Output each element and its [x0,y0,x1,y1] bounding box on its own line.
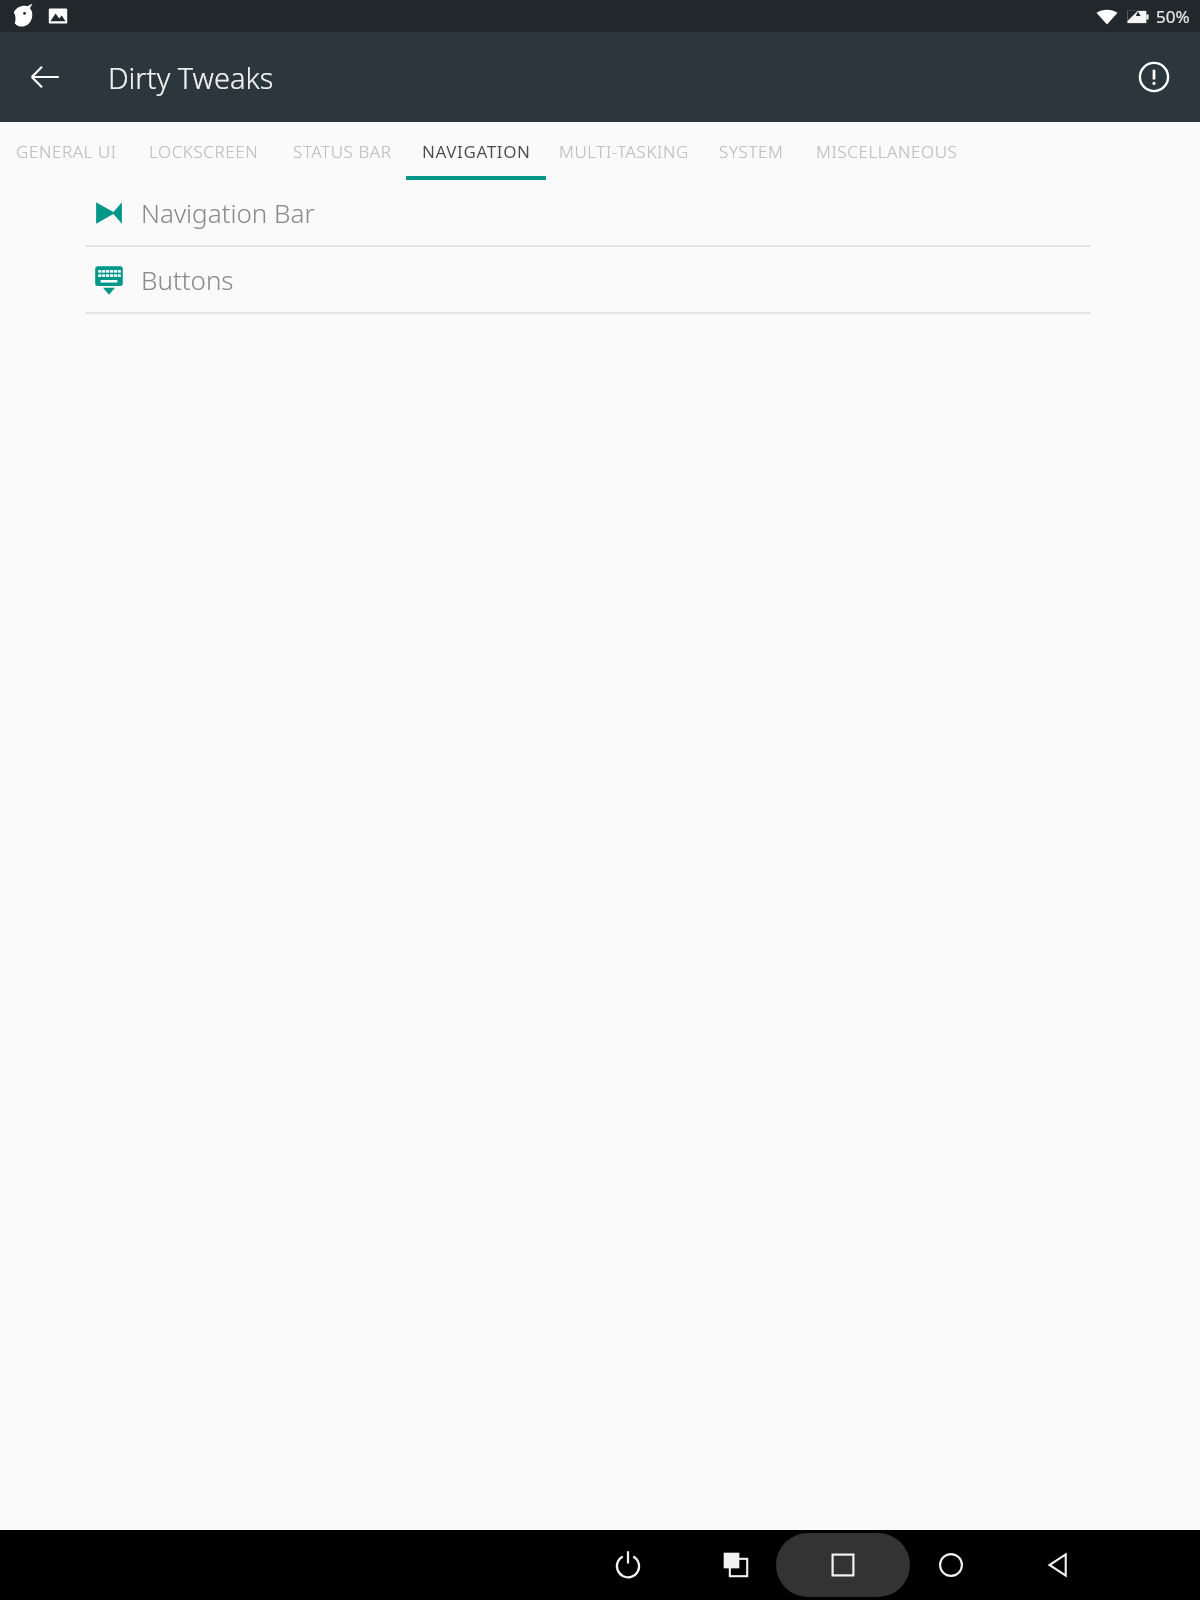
staticText: STATUS BAR [293,140,392,163]
button[interactable]: Power [592,1530,664,1600]
staticText: 50% [1156,5,1190,28]
staticText: GENERAL UI [16,140,117,163]
button[interactable]: Recent apps [807,1530,879,1600]
staticText: Buttons [141,262,234,297]
button[interactable]: Navigation Bar [0,180,1200,245]
button[interactable]: GENERAL UI [6,122,126,180]
button[interactable]: NAVIGATION [396,122,556,180]
staticText: NAVIGATION [422,140,531,163]
button[interactable]: Back [1023,1530,1095,1600]
staticText: MULTI-TASKING [559,140,689,163]
staticText: Navigation Bar [141,195,315,230]
button[interactable]: MISCELLANEOUS [805,122,968,180]
staticText: Dirty Tweaks [108,58,274,97]
staticText: LOCKSCREEN [149,140,259,163]
button[interactable]: Split screen [700,1530,772,1600]
button[interactable]: LOCKSCREEN [136,122,272,180]
button[interactable]: Buttons [0,247,1200,312]
button[interactable]: Home [915,1530,987,1600]
button[interactable]: Back [14,46,76,108]
button[interactable]: SYSTEM [708,122,795,180]
staticText: MISCELLANEOUS [816,140,958,163]
button[interactable]: Information [1124,47,1184,107]
button[interactable]: STATUS BAR [282,122,402,180]
staticText: SYSTEM [719,140,784,163]
button[interactable]: MULTI-TASKING [550,122,698,180]
